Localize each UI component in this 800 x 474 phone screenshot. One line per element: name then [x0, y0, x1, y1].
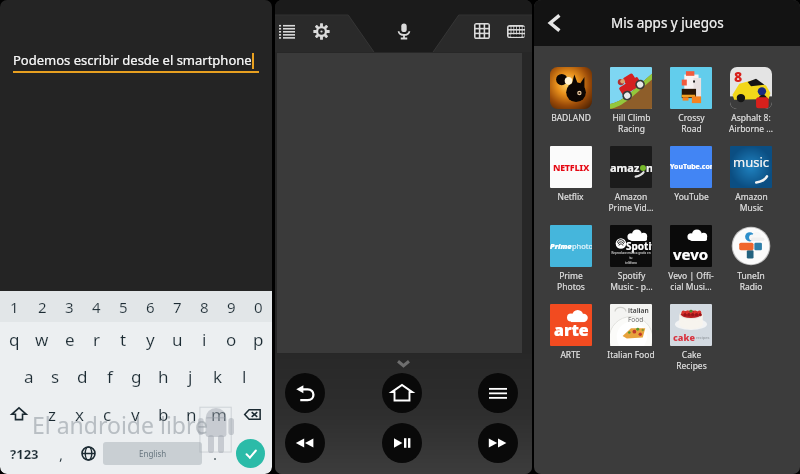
staticText: Cake Recipes [676, 349, 707, 362]
button[interactable]: c [93, 395, 121, 433]
button[interactable]: Crossy Road [661, 46, 721, 125]
button[interactable]: 3 [56, 291, 83, 322]
staticText: 1 [10, 297, 19, 317]
staticText: z [48, 403, 56, 426]
button[interactable]: 9 [218, 291, 245, 322]
button[interactable]: Enter [228, 433, 272, 474]
button[interactable]: List [275, 10, 299, 52]
staticText: Food [628, 315, 644, 324]
button[interactable]: BADLAND [540, 46, 601, 125]
button[interactable]: Back [534, 0, 576, 46]
button[interactable]: h [150, 357, 177, 395]
button[interactable]: Keyboard [500, 10, 532, 52]
button[interactable]: Voice [384, 10, 424, 52]
button[interactable]: Settings [299, 10, 343, 52]
button[interactable]: m [205, 395, 233, 433]
button[interactable]: x [65, 395, 93, 433]
staticText: YouTube [674, 191, 709, 203]
button[interactable]: w [28, 322, 56, 357]
button[interactable]: Play pause [382, 423, 422, 463]
button[interactable]: Back [285, 373, 325, 413]
button[interactable]: , [48, 433, 74, 474]
staticText: k [213, 365, 223, 388]
button[interactable]: i [191, 322, 218, 357]
staticText: 6 [146, 297, 155, 317]
button[interactable]: Menu [478, 373, 518, 413]
button[interactable]: Language [74, 433, 103, 474]
button[interactable]: g [123, 357, 150, 395]
button[interactable]: amaz [601, 125, 661, 204]
staticText: amaz [610, 160, 640, 175]
button[interactable]: e [56, 322, 83, 357]
button[interactable]: Spotify [601, 204, 661, 283]
button[interactable]: l [231, 357, 258, 395]
button[interactable]: f [96, 357, 123, 395]
button[interactable]: arte [540, 283, 601, 362]
staticText: h [158, 365, 169, 388]
staticText: o [226, 328, 237, 351]
staticText: g [131, 365, 142, 388]
staticText: j [188, 365, 193, 388]
button[interactable]: TuneIn Radio [721, 204, 781, 283]
button[interactable]: Apps [464, 10, 500, 52]
button[interactable]: q [0, 322, 28, 357]
button[interactable]: NETFLIX [540, 125, 601, 204]
staticText: . [213, 444, 218, 464]
button[interactable]: Backspace [233, 395, 272, 433]
staticText: Prime [550, 241, 572, 251]
button[interactable]: 8 [721, 46, 781, 125]
button[interactable]: 6 [137, 291, 164, 322]
button[interactable]: vevo [661, 204, 721, 283]
button[interactable]: r [83, 322, 110, 357]
button[interactable]: u [164, 322, 191, 357]
button[interactable]: j [177, 357, 204, 395]
staticText: r [93, 328, 101, 351]
button[interactable]: Home [382, 373, 422, 413]
staticText: Amazon Music [735, 191, 768, 204]
button[interactable]: 4 [83, 291, 110, 322]
button[interactable]: Hill Climb Racing [601, 46, 661, 125]
button[interactable]: d [69, 357, 96, 395]
staticText: 2 [38, 297, 47, 317]
staticText: English [139, 448, 167, 459]
button[interactable]: Shift [0, 395, 38, 433]
button[interactable]: ?123 [0, 433, 48, 474]
button[interactable]: 2 [28, 291, 56, 322]
staticText: c [103, 403, 112, 426]
button[interactable]: 0 [245, 291, 272, 322]
staticText: p [253, 328, 264, 351]
staticText: d [77, 365, 88, 388]
staticText: y [146, 328, 155, 351]
button[interactable]: Fast forward [478, 423, 518, 463]
button[interactable]: 1 [0, 291, 28, 322]
staticText: Asphalt 8: Airborne … [729, 112, 773, 125]
staticText: YouTube.com [670, 162, 712, 172]
button[interactable]: n [177, 395, 205, 433]
button[interactable]: s [42, 357, 69, 395]
button[interactable]: English [103, 442, 202, 465]
button[interactable]: italian [601, 283, 661, 362]
button[interactable]: Rewind [285, 423, 325, 463]
staticText: 5 [119, 297, 128, 317]
button[interactable]: t [110, 322, 137, 357]
button[interactable]: music [721, 125, 781, 204]
staticText: v [131, 403, 140, 426]
staticText: w [35, 328, 49, 351]
staticText: 7 [173, 297, 182, 317]
button[interactable]: k [204, 357, 231, 395]
button[interactable]: o [218, 322, 245, 357]
button[interactable]: cake [661, 283, 721, 362]
button[interactable]: a [15, 357, 42, 395]
button[interactable]: 5 [110, 291, 137, 322]
button[interactable]: z [38, 395, 65, 433]
button[interactable]: y [137, 322, 164, 357]
button[interactable]: p [245, 322, 272, 357]
button[interactable]: Prime [540, 204, 601, 283]
button[interactable]: . [202, 433, 228, 474]
button[interactable]: 7 [164, 291, 191, 322]
button[interactable]: YouTube.com [661, 125, 721, 204]
button[interactable]: b [149, 395, 177, 433]
button[interactable]: 8 [191, 291, 218, 322]
button[interactable]: v [121, 395, 149, 433]
